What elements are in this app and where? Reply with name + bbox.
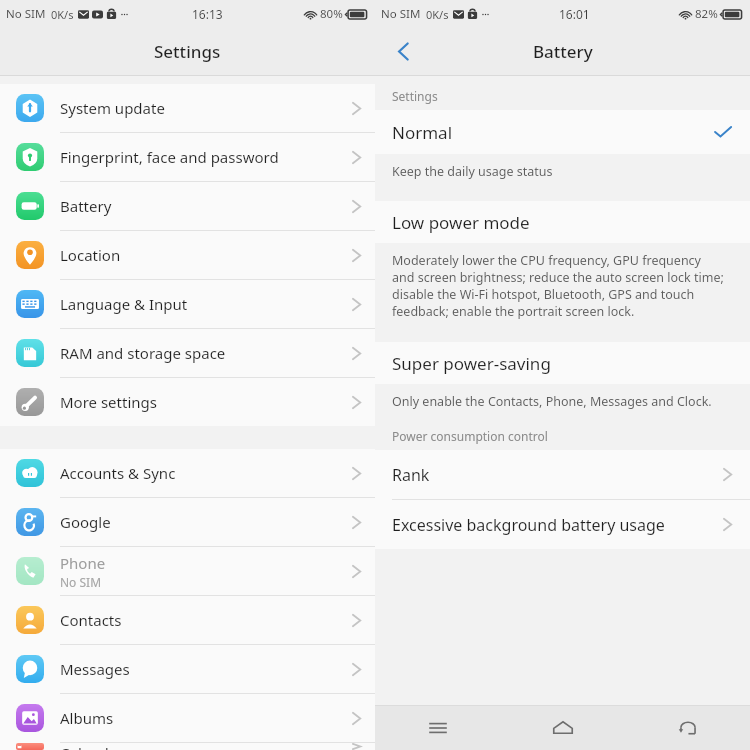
staticText: Only enable the Contacts, Phone, Message…	[392, 393, 712, 410]
staticText: System update	[60, 98, 165, 118]
staticText: No SIM	[6, 6, 46, 22]
staticText: Google	[60, 512, 111, 532]
staticText: Battery	[533, 40, 593, 63]
staticText: No SIM	[60, 574, 102, 590]
staticText: Low power mode	[392, 211, 530, 234]
button[interactable]: Rank	[375, 450, 750, 499]
button[interactable]: Home	[500, 706, 625, 750]
staticText: Settings	[392, 88, 438, 104]
staticText: Settings	[154, 40, 221, 63]
button[interactable]: Super power-saving	[375, 342, 750, 384]
button[interactable]: Excessive background battery usage	[375, 500, 750, 549]
button[interactable]: More settings	[0, 378, 375, 426]
staticText: 0K/s	[426, 7, 449, 22]
staticText: Phone	[60, 553, 106, 573]
button[interactable]: Normal	[375, 110, 750, 154]
button[interactable]: Accounts & Sync	[0, 449, 375, 497]
button[interactable]: Phone	[0, 547, 375, 595]
staticText: Albums	[60, 708, 114, 728]
button[interactable]: Back	[625, 706, 750, 750]
staticText: 80%	[320, 6, 343, 22]
button[interactable]: Albums	[0, 694, 375, 742]
staticText: RAM and storage space	[60, 343, 226, 363]
staticText: Excessive background battery usage	[392, 514, 723, 536]
button[interactable]: RAM and storage space	[0, 329, 375, 377]
staticText: Moderately lower the CPU frequency, GPU …	[392, 252, 724, 320]
staticText: Messages	[60, 659, 130, 679]
button[interactable]: Language & Input	[0, 280, 375, 328]
staticText: Battery	[60, 196, 112, 216]
button[interactable]: Google	[0, 498, 375, 546]
staticText: 16:01	[559, 6, 590, 22]
button[interactable]: Messages	[0, 645, 375, 693]
staticText: Accounts & Sync	[60, 463, 176, 483]
staticText: Contacts	[60, 610, 122, 630]
staticText: Super power-saving	[392, 352, 551, 375]
button[interactable]: Back	[375, 28, 431, 75]
staticText: Keep the daily usage status	[392, 163, 553, 180]
staticText: Power consumption control	[392, 428, 548, 444]
staticText: Location	[60, 245, 121, 265]
staticText: No SIM	[381, 6, 421, 22]
staticText: More settings	[60, 392, 157, 412]
staticText: 16:13	[192, 6, 223, 22]
button[interactable]: Low power mode	[375, 201, 750, 243]
staticText: 0K/s	[51, 7, 74, 22]
button[interactable]: Location	[0, 231, 375, 279]
staticText: Fingerprint, face and password	[60, 147, 279, 167]
staticText: Rank	[392, 464, 723, 486]
staticText: Normal	[392, 121, 714, 144]
staticText: 82%	[695, 6, 718, 22]
staticText: Calendar	[60, 743, 124, 750]
button[interactable]: System update	[0, 84, 375, 132]
button[interactable]: Battery	[0, 182, 375, 230]
button[interactable]: Menu	[375, 706, 500, 750]
button[interactable]: Calendar	[0, 743, 375, 750]
button[interactable]: Contacts	[0, 596, 375, 644]
button[interactable]: Fingerprint, face and password	[0, 133, 375, 181]
staticText: Language & Input	[60, 294, 188, 314]
